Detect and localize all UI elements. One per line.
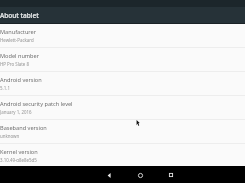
staticText: Manufacturer [0,28,37,36]
staticText: HP Pro Slate 8 [0,61,29,67]
staticText: About tablet [0,11,39,20]
staticText: Kernel version [0,148,38,156]
staticText: unknown [0,133,20,139]
staticText: Baseband version [0,124,47,132]
button[interactable]: Android version [0,72,245,96]
button[interactable]: Kernel version [0,144,245,166]
button[interactable]: About tablet [0,7,245,23]
staticText: Model number [0,52,39,60]
staticText: 5.1.1 [0,85,10,91]
button[interactable]: Recent apps [163,167,179,183]
staticText: January 1, 2016 [0,109,32,115]
button[interactable]: Home [132,167,148,183]
button[interactable]: Model number [0,48,245,72]
staticText: Android security patch level [0,100,73,108]
staticText: 3.10.49-g8e8e5d5 [0,157,37,162]
button[interactable]: Baseband version [0,120,245,144]
button[interactable]: Manufacturer [0,24,245,48]
staticText: Hewlett-Packard [0,37,34,43]
staticText: Android version [0,76,42,84]
button[interactable]: Back [101,167,117,183]
button[interactable]: Android security patch level [0,96,245,120]
